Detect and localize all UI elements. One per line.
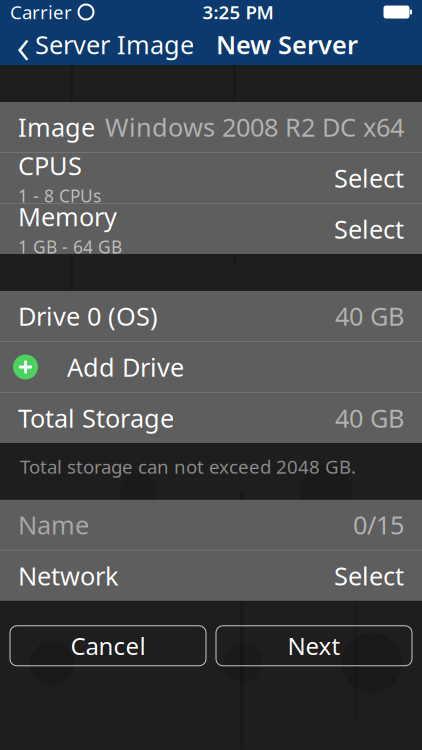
staticText: Server Image <box>35 28 194 61</box>
staticText: Add Drive <box>67 350 184 384</box>
staticText: Total storage can not exceed 2048 GB. <box>20 454 356 479</box>
staticText: 0/15 <box>353 508 404 542</box>
staticText: Select <box>334 559 404 593</box>
button[interactable]: Add Drive <box>0 342 422 392</box>
button[interactable]: Name <box>0 500 422 550</box>
button[interactable]: Memory <box>0 204 422 254</box>
button[interactable]: Next <box>216 626 412 666</box>
button[interactable]: Drive 0 (OS) <box>0 291 422 341</box>
staticText: 1 GB - 64 GB <box>18 235 122 258</box>
staticText: New Server <box>216 28 358 61</box>
staticText: 40 GB <box>335 299 404 333</box>
button[interactable]: Network <box>0 551 422 601</box>
staticText: Next <box>287 630 340 662</box>
button[interactable]: CPUS <box>0 153 422 203</box>
staticText: Carrier <box>10 0 72 24</box>
staticText: Select <box>334 161 404 195</box>
staticText: Network <box>18 559 119 593</box>
staticText: Image <box>18 110 95 144</box>
staticText: Drive 0 (OS) <box>18 299 158 333</box>
button[interactable]: Cancel <box>10 626 206 666</box>
staticText: Cancel <box>70 630 145 662</box>
staticText: Memory <box>18 200 117 233</box>
button[interactable]: Image <box>0 102 422 152</box>
staticText: Total Storage <box>18 401 174 435</box>
staticText: Windows 2008 R2 DC x64 <box>105 110 404 144</box>
button[interactable]: Total Storage <box>0 393 422 443</box>
button[interactable]: ‹ <box>8 24 202 65</box>
staticText: 1 - 8 CPUs <box>18 184 101 207</box>
staticText: 3:25 PM <box>202 0 273 24</box>
staticText: Select <box>334 212 404 246</box>
staticText: Name <box>18 508 89 542</box>
staticText: ‹ <box>16 11 29 78</box>
staticText: CPUS <box>18 149 82 182</box>
staticText: 40 GB <box>335 401 404 435</box>
